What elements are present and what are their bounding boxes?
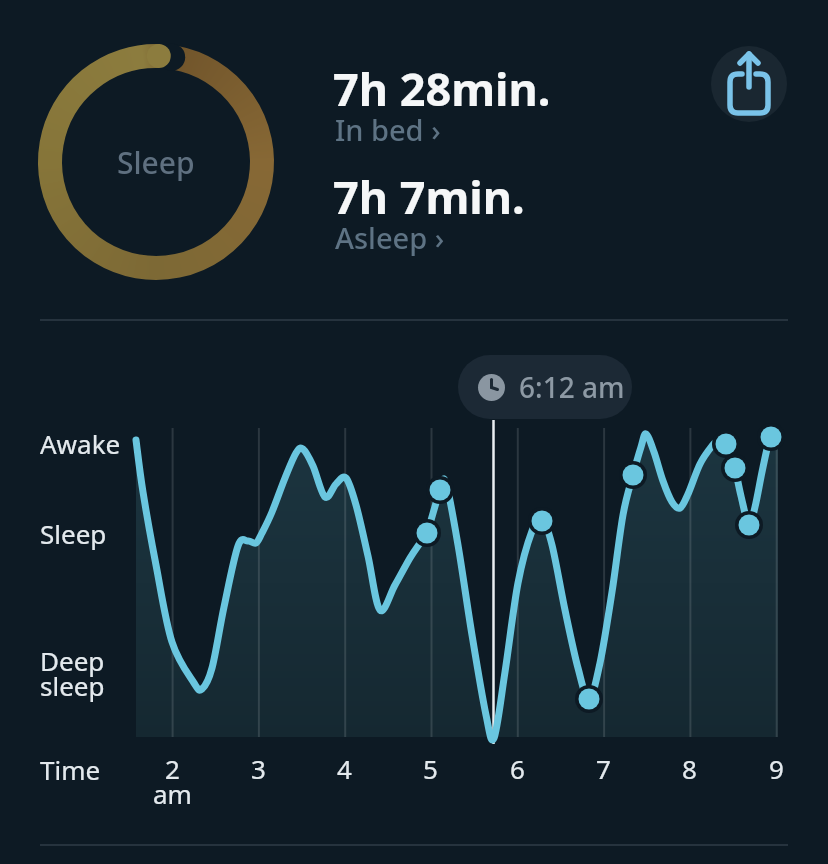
staticText: Awake: [40, 426, 121, 461]
staticText: 8: [682, 751, 697, 786]
staticText: 7: [596, 751, 611, 786]
staticText: 4: [337, 751, 352, 786]
staticText: 5: [423, 751, 438, 786]
button[interactable]: [711, 46, 787, 122]
staticText: 3: [251, 751, 266, 786]
staticText: 7h 7min.: [333, 166, 525, 227]
staticText: Deep sleep: [40, 643, 105, 704]
button[interactable]: 6:12 am: [458, 355, 632, 419]
button[interactable]: In bed ›: [335, 110, 441, 149]
staticText: Time: [40, 752, 101, 787]
staticText: Sleep: [40, 516, 107, 551]
button[interactable]: Asleep ›: [335, 218, 445, 257]
staticText: am: [153, 776, 192, 811]
staticText: 7h 28min.: [333, 58, 551, 119]
staticText: 6:12 am: [519, 368, 625, 406]
staticText: 6: [510, 751, 525, 786]
staticText: 9: [769, 751, 784, 786]
staticText: 2: [165, 751, 180, 786]
staticText: Sleep: [117, 142, 195, 183]
